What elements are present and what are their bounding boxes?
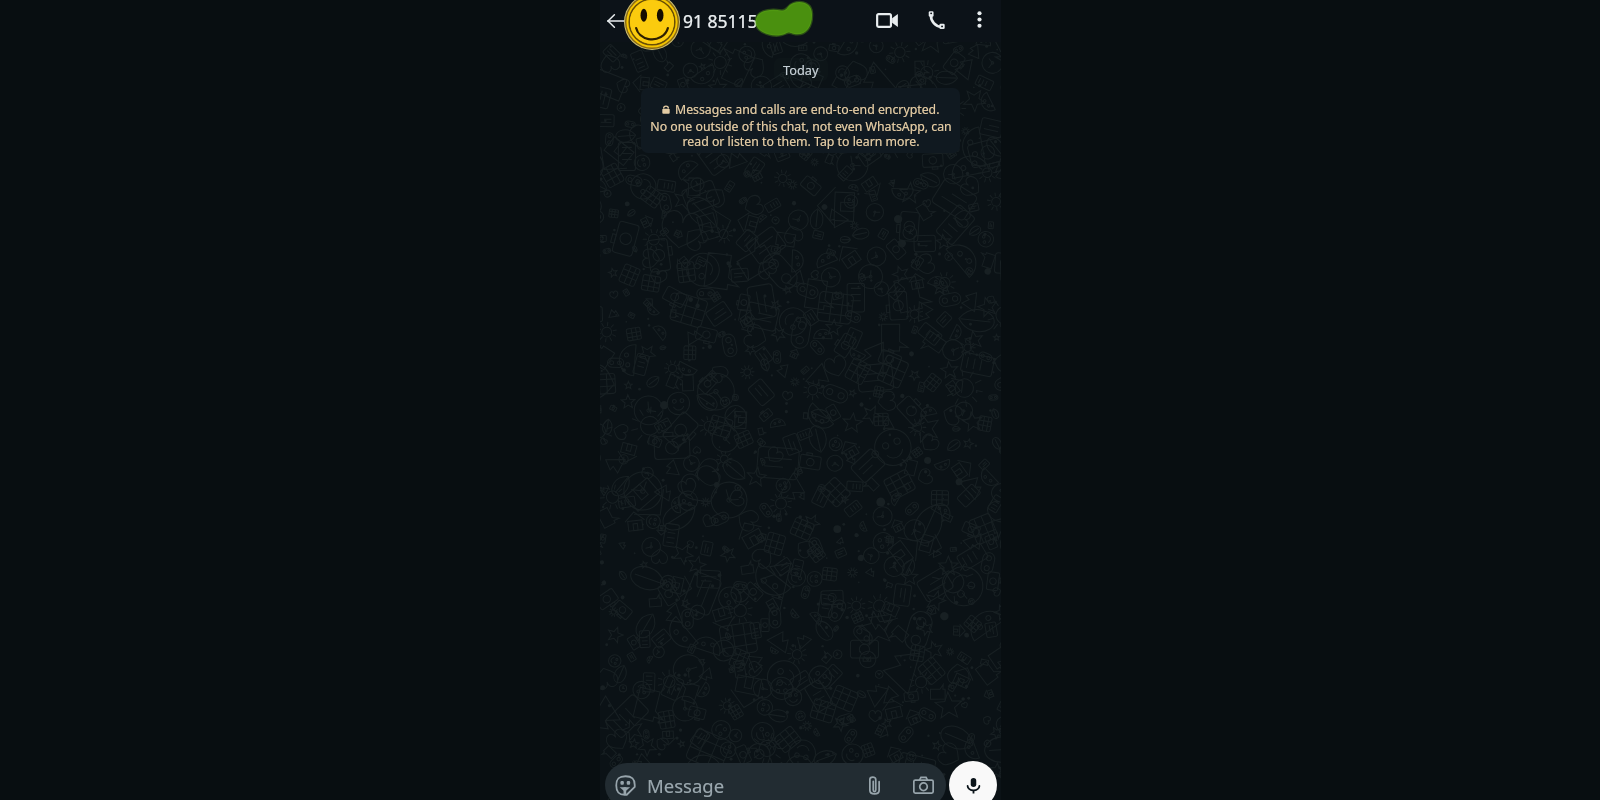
- staticText: Message: [647, 773, 725, 798]
- button[interactable]: Messages and calls are end-to-end encryp…: [641, 88, 960, 153]
- button[interactable]: Video call: [867, 0, 907, 40]
- button[interactable]: More options: [960, 0, 998, 38]
- staticText: Messages and calls are end-to-end encryp…: [675, 101, 940, 118]
- button[interactable]: Back: [602, 0, 630, 42]
- button[interactable]: Voice call: [916, 0, 956, 40]
- staticText: No one outside of this chat, not even Wh…: [650, 118, 952, 149]
- button[interactable]: Voice message: [949, 761, 997, 800]
- staticText: Today: [783, 61, 819, 78]
- staticText: 91 85115: [683, 9, 758, 33]
- button[interactable]: Message: [605, 763, 946, 800]
